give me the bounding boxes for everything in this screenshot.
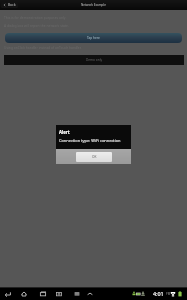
button[interactable]: Recent apps <box>38 289 48 299</box>
button[interactable]: Back <box>3 289 13 299</box>
button[interactable]: Expand status bar <box>85 289 95 299</box>
staticText: Alert <box>59 129 70 135</box>
button[interactable]: Tap here <box>5 33 182 43</box>
staticText: Back <box>8 3 16 7</box>
staticText: A dialog box will report the network sta… <box>4 23 69 27</box>
button[interactable]: OK <box>76 152 112 162</box>
staticText: 4:01 <box>153 290 164 297</box>
staticText: Using onClick handler instead of onTouch… <box>4 45 82 49</box>
staticText: Tap here <box>87 36 100 40</box>
staticText: OK <box>92 155 97 159</box>
staticText: PM <box>166 292 171 296</box>
button[interactable]: Home <box>19 289 29 299</box>
button[interactable]: Screenshot <box>54 289 64 299</box>
button[interactable]: Demo only <box>4 55 184 65</box>
staticText: Connection type: WiFi connection <box>59 138 121 143</box>
button[interactable]: Menu <box>72 289 82 299</box>
button[interactable]: Back <box>3 2 16 8</box>
staticText: Demo only <box>86 58 103 62</box>
staticText: This is for demonstration purposes only. <box>4 15 67 19</box>
staticText: Network Example <box>81 3 106 7</box>
